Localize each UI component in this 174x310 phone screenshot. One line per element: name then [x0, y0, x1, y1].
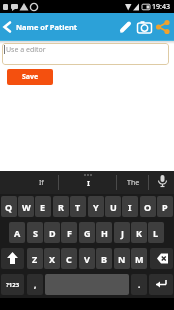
button[interactable]: E	[35, 196, 51, 217]
button[interactable]: X	[44, 248, 60, 269]
button[interactable]: C	[61, 248, 77, 269]
staticText: ,	[34, 279, 37, 290]
staticText: Save	[22, 72, 39, 82]
button[interactable]: W	[18, 196, 34, 217]
staticText: N	[118, 253, 126, 265]
staticText: A	[14, 227, 21, 239]
button[interactable]: If	[24, 171, 58, 194]
button[interactable]: D	[44, 222, 60, 243]
staticText: M	[135, 253, 144, 265]
staticText: 19:43	[152, 2, 170, 12]
button[interactable]: ?123	[1, 274, 24, 295]
staticText: ?123	[6, 281, 20, 289]
button[interactable]: ,	[27, 274, 43, 295]
button[interactable]: L	[148, 222, 164, 243]
staticText: D	[49, 227, 56, 239]
staticText: X	[49, 253, 56, 265]
staticText: G	[84, 227, 91, 239]
staticText: I	[87, 178, 90, 188]
button[interactable]: F	[61, 222, 77, 243]
button[interactable]: S	[27, 222, 43, 243]
staticText: H	[101, 227, 108, 239]
staticText: W	[22, 201, 31, 213]
button[interactable]: A	[9, 222, 25, 243]
button[interactable]: I	[70, 171, 106, 194]
button[interactable]: V	[79, 248, 95, 269]
button[interactable]: Q	[1, 196, 17, 217]
staticText: Name of Patient	[16, 22, 78, 32]
staticText: If	[39, 178, 44, 188]
button[interactable]: P	[157, 196, 173, 217]
button[interactable]: Save	[7, 69, 53, 85]
button[interactable]: O	[140, 196, 156, 217]
button[interactable]: T	[70, 196, 86, 217]
staticText: L	[153, 227, 159, 239]
staticText: Z	[32, 253, 38, 265]
button[interactable]	[1, 248, 24, 269]
button[interactable]: H	[96, 222, 112, 243]
button[interactable]: Z	[27, 248, 43, 269]
staticText: Q	[5, 201, 13, 213]
button[interactable]: G	[79, 222, 95, 243]
staticText: P	[162, 201, 168, 213]
button[interactable]: J	[114, 222, 130, 243]
button[interactable]: N	[114, 248, 130, 269]
button[interactable]	[136, 19, 153, 36]
button[interactable]: Y	[88, 196, 104, 217]
staticText: C	[66, 253, 72, 265]
staticText: V	[84, 253, 90, 265]
staticText: E	[40, 201, 46, 213]
button[interactable]	[155, 19, 171, 35]
button[interactable]: B	[96, 248, 112, 269]
staticText: T	[75, 201, 81, 213]
staticText: S	[33, 227, 38, 239]
staticText: J	[121, 227, 124, 239]
button[interactable]: R	[53, 196, 69, 217]
button[interactable]: The	[118, 171, 148, 194]
staticText: I	[128, 201, 132, 213]
button[interactable]: I	[122, 196, 138, 217]
button[interactable]: M	[131, 248, 147, 269]
staticText: The	[127, 178, 140, 188]
button[interactable]: K	[131, 222, 147, 243]
staticText: Y	[93, 201, 99, 213]
staticText: K	[136, 227, 142, 239]
button[interactable]: U	[105, 196, 121, 217]
button[interactable]	[149, 274, 173, 295]
staticText: F	[67, 227, 72, 239]
button[interactable]	[118, 19, 134, 35]
staticText: .	[138, 279, 141, 290]
staticText: O	[144, 201, 152, 213]
staticText: Use a editor	[6, 45, 46, 55]
button[interactable]: .	[131, 274, 147, 295]
button[interactable]: Name of Patient	[0, 20, 78, 34]
staticText: U	[110, 201, 117, 213]
button[interactable]	[150, 248, 173, 269]
staticText: R	[58, 201, 64, 213]
button[interactable]	[150, 171, 174, 194]
staticText: B	[101, 253, 107, 265]
button[interactable]: Use a editor	[2, 43, 169, 65]
